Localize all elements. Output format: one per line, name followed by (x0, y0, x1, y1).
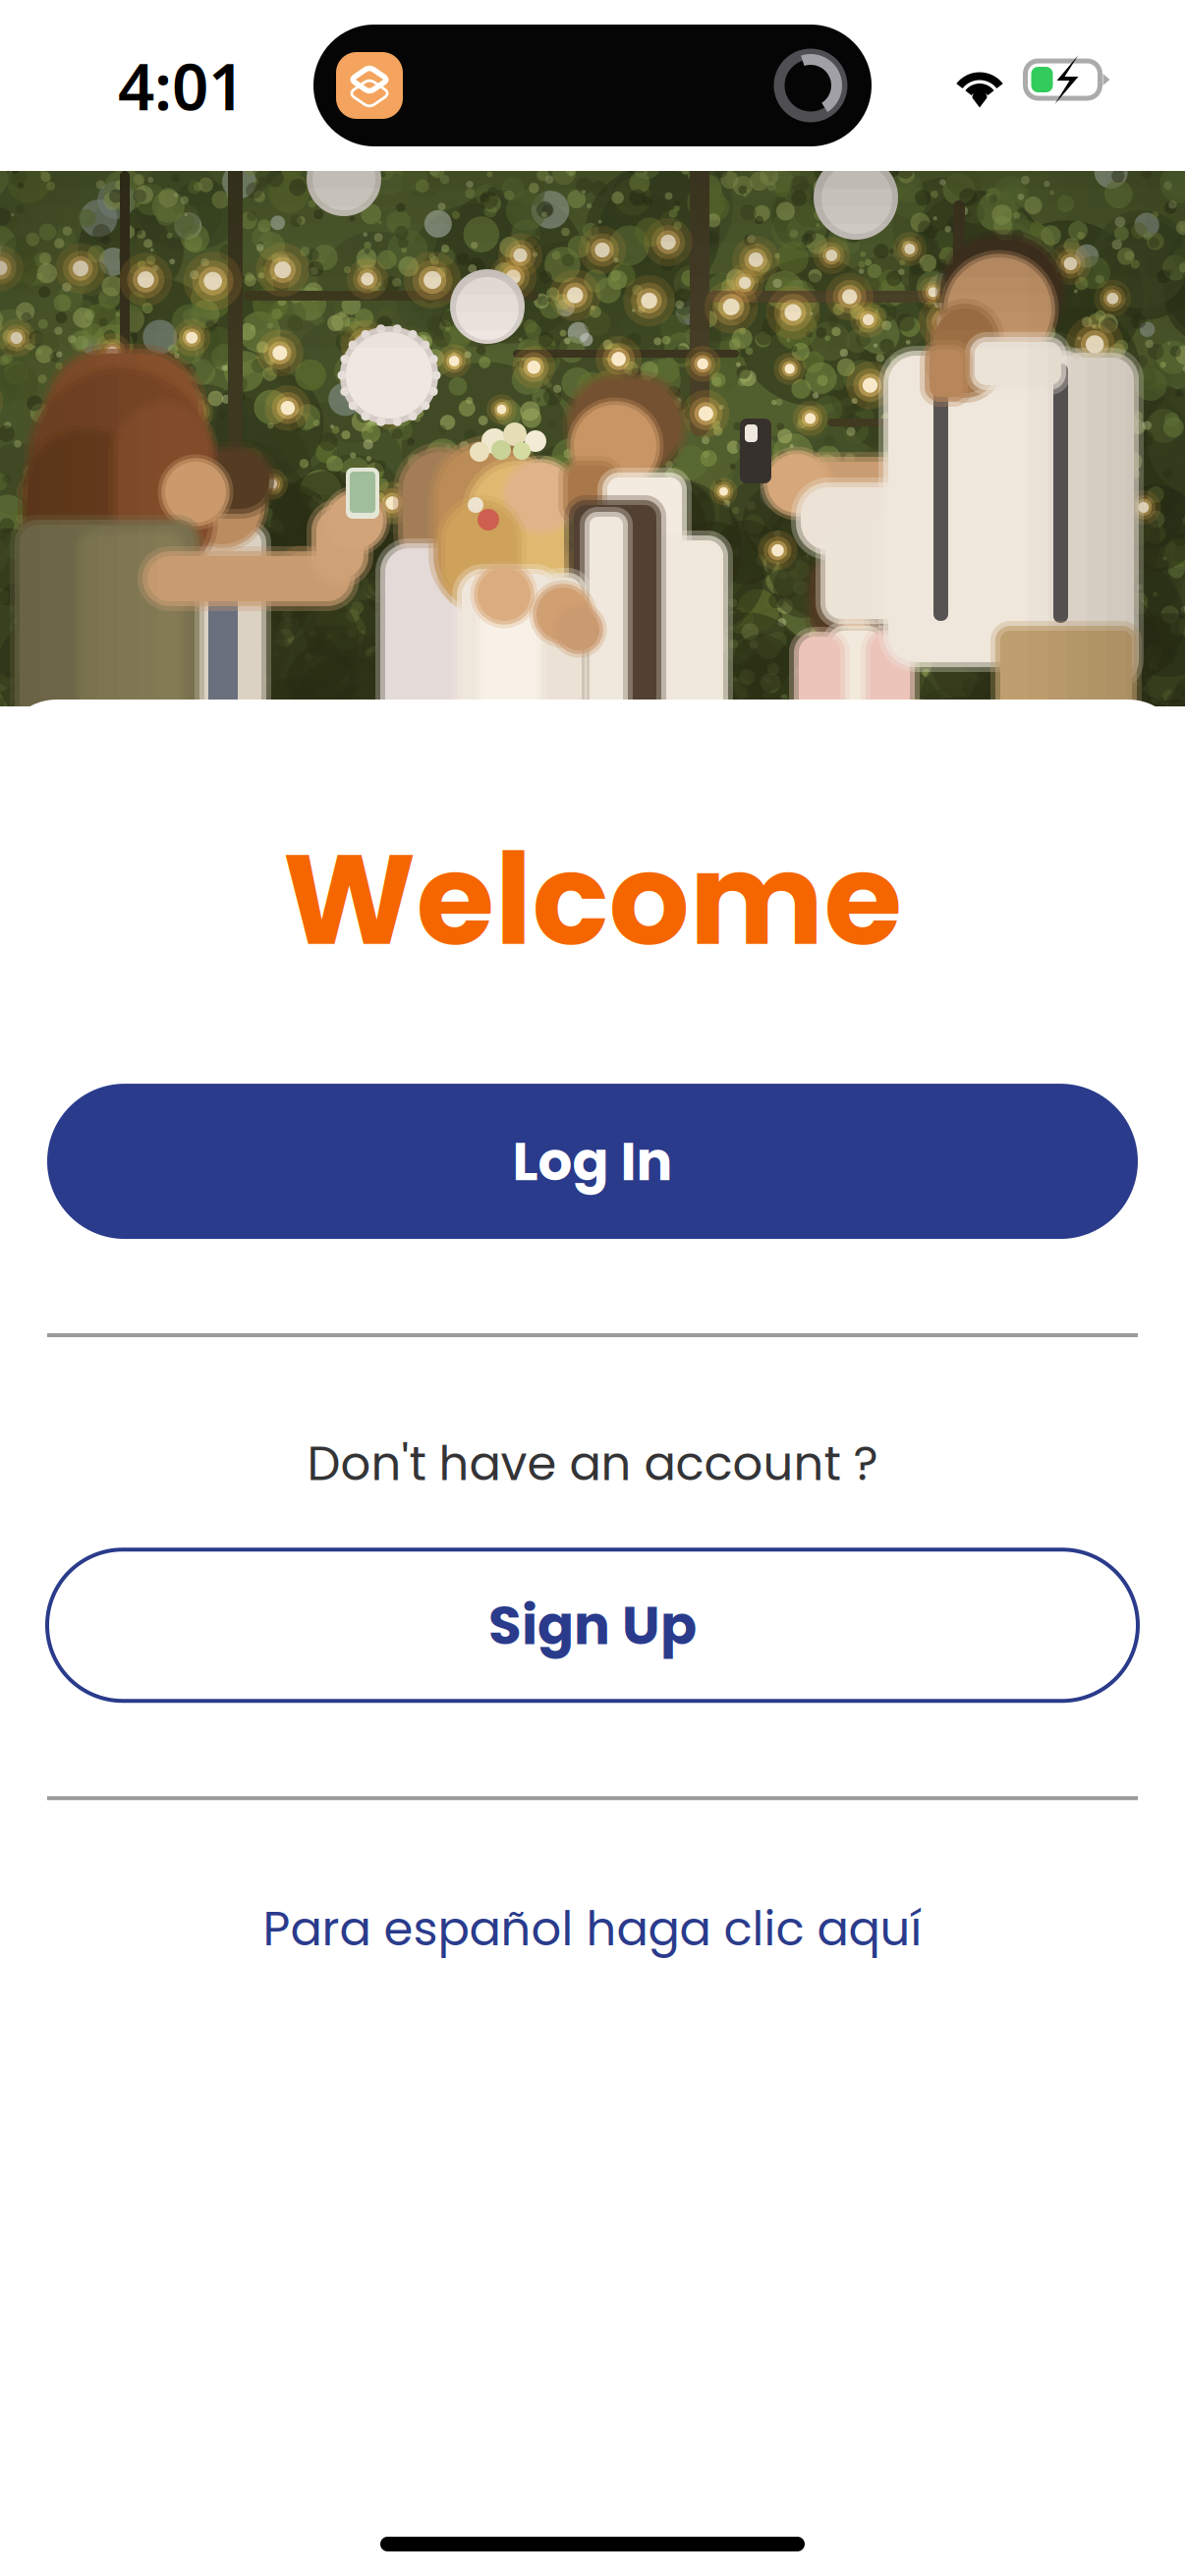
button[interactable]: Sign Up (47, 1550, 1138, 1701)
staticText: 4:01 (118, 43, 245, 128)
staticText: Para español haga clic aquí (263, 1896, 922, 1962)
button[interactable]: Para español haga clic aquí (0, 1894, 1185, 1963)
button[interactable]: Log In (47, 1084, 1138, 1239)
staticText: Sign Up (488, 1588, 697, 1663)
staticText: Welcome (282, 811, 903, 988)
staticText: Don't have an account ? (307, 1431, 878, 1497)
staticText: Log In (512, 1124, 673, 1199)
